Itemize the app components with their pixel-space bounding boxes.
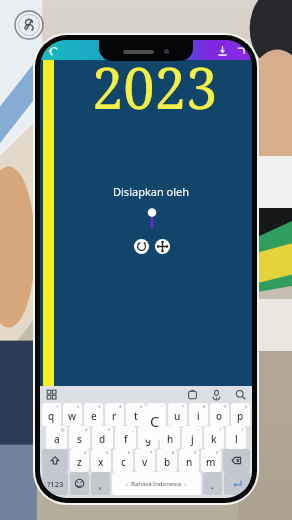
staticText: . [211,478,214,492]
button[interactable]: ( [204,426,224,449]
staticText: 2 [77,404,80,409]
staticText: + [197,427,200,432]
button[interactable]: 3 [84,403,103,426]
staticText: p [237,409,244,423]
staticText: w [68,409,77,423]
button[interactable]: & [138,426,158,449]
button[interactable]: Undo [47,44,60,57]
button[interactable]: Search [235,389,246,400]
button[interactable]: Download [216,44,229,57]
staticText: 5 [106,450,109,455]
button[interactable]: 0 [231,403,250,426]
button[interactable]: ?123 [42,472,68,495]
staticText: m [206,455,216,469]
staticText: 4 [84,450,87,455]
button[interactable]: 4 [105,403,124,426]
staticText: , [99,478,102,492]
staticText: l [235,432,238,446]
button[interactable]: @ [46,426,67,449]
staticText: 0 [216,450,219,455]
staticText: - [176,427,178,432]
button[interactable]: 2 [63,403,82,426]
button[interactable]: 8 [157,449,177,472]
staticText: g [145,432,152,446]
staticText: _ [132,427,134,432]
button[interactable]: Backspace [223,449,250,472]
staticText: c [121,455,126,469]
button[interactable]: 7 [168,403,187,426]
staticText: 9 [224,404,227,409]
staticText: a [54,432,60,446]
button[interactable]: Clipboard [187,389,198,400]
staticText: 1 [56,404,59,409]
button[interactable]: 6 [147,403,166,426]
button[interactable]: 5 [126,403,145,426]
staticText: x [98,455,104,469]
button[interactable]: ) [226,426,246,449]
staticText: 2023 [92,49,218,125]
staticText: 8 [203,404,206,409]
button[interactable]: # [69,426,90,449]
staticText: ) [242,427,244,432]
button[interactable]: ‹ Bahasa Indonesia › [112,472,201,495]
button[interactable]: $ [92,426,113,449]
staticText: 0 [245,404,248,409]
staticText: 4 [119,404,122,409]
staticText: 6 [161,404,164,409]
staticText: o [216,409,223,423]
button[interactable]: 1 [42,403,61,426]
staticText: Disiapkan oleh [113,184,190,199]
staticText: y [154,409,160,423]
button[interactable]: 0 [201,449,221,472]
staticText: h [167,432,174,446]
staticText: q [48,409,55,423]
staticText: b [164,455,171,469]
button[interactable]: Emoji [70,472,89,495]
staticText: @ [61,427,65,432]
staticText: 7 [182,404,185,409]
button[interactable]: - [160,426,180,449]
staticText: v [142,455,148,469]
button[interactable]: _ [115,426,136,449]
button[interactable]: Shift [42,449,68,472]
button[interactable]: Voice input [211,389,222,400]
button[interactable]: 5 [91,449,111,472]
button[interactable]: 8 [189,403,208,426]
staticText: k [211,432,217,446]
staticText: t [134,409,138,423]
staticText: e [91,409,97,423]
button[interactable]: 4 [70,449,89,472]
staticText: 9 [194,450,197,455]
staticText: ( [220,427,222,432]
button[interactable]: Keyboard modes [46,389,57,400]
staticText: 5 [140,404,143,409]
staticText: $ [108,427,111,432]
staticText: u [174,409,181,423]
button[interactable]: Enter [224,472,250,495]
button[interactable]: 7 [135,449,155,472]
staticText: r [112,409,117,423]
button[interactable]: More options [235,45,247,57]
staticText: i [197,409,200,423]
staticText: C [150,411,160,431]
button[interactable]: 9 [179,449,199,472]
staticText: 6 [128,450,131,455]
button[interactable]: , [91,472,110,495]
staticText: f [124,432,128,446]
staticText: s [77,432,82,446]
button[interactable]: + [182,426,202,449]
staticText: j [191,432,194,446]
button[interactable]: Move element [155,239,170,254]
staticText: d [99,432,106,446]
staticText: z [77,455,82,469]
staticText: 8 [172,450,175,455]
button[interactable]: Rotate element [134,239,149,254]
button[interactable]: 9 [210,403,229,426]
button[interactable]: 6 [113,449,133,472]
button[interactable]: . [203,472,222,495]
staticText: 3 [98,404,101,409]
staticText: ?123 [47,479,64,489]
staticText: 7 [150,450,153,455]
staticText: n [186,455,193,469]
